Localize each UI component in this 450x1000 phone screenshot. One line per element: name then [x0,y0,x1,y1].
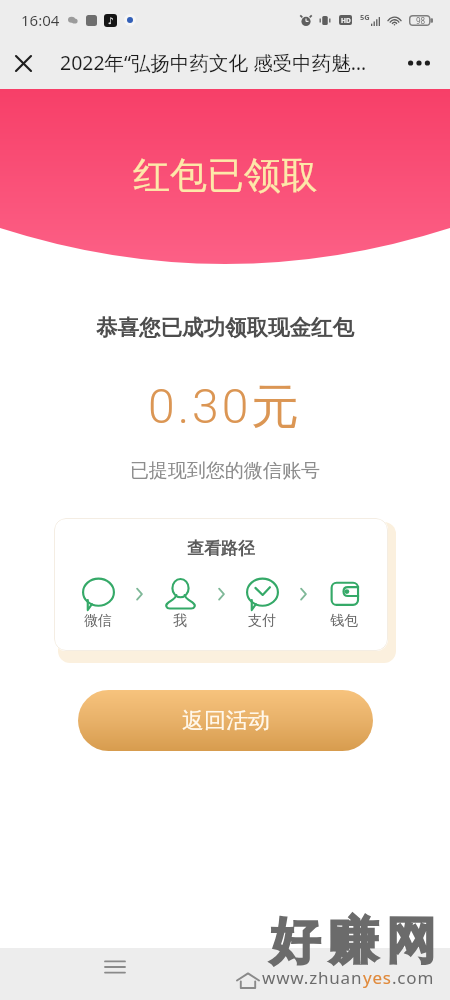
button[interactable]: Menu [93,945,137,989]
button[interactable]: 钱包 [326,577,362,630]
staticText: 16:04 [21,10,60,30]
button[interactable]: 返回活动 [78,690,373,751]
button[interactable]: More options [400,44,438,82]
staticText: HD [341,16,351,25]
staticText: 恭喜您已成功领取现金红包 [96,314,354,341]
staticText: 我 [173,612,187,630]
staticText: 查看路径 [187,538,255,559]
staticText: 钱包 [330,612,358,630]
staticText: 2022年“弘扬中药文化 感受中药魅… [60,49,367,76]
staticText: ♪ [108,16,114,26]
button[interactable]: 我 [162,577,198,630]
button[interactable]: 微信 [80,577,116,630]
staticText: 好赚网 [266,910,440,973]
staticText: 微信 [84,612,112,630]
staticText: 返回活动 [182,707,270,735]
staticText: 红包已领取 [133,152,318,199]
staticText: 已提现到您的微信账号 [130,459,320,483]
staticText: 98 [416,15,426,26]
button[interactable]: 查看路径 [54,518,388,651]
staticText: 支付 [248,612,276,630]
staticText: 5G [360,12,370,22]
staticText: yes [363,966,392,989]
staticText: 0.30元 [148,377,303,437]
staticText: www.zhuan [262,966,363,989]
button[interactable]: 支付 [244,577,280,630]
button[interactable]: Close [4,44,42,82]
staticText: .com [392,966,435,989]
